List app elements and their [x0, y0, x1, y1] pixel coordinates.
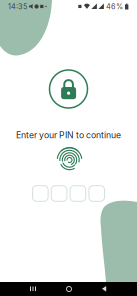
- staticText: Enter your PIN to continue: [16, 130, 121, 140]
- button[interactable]: PIN digit: [70, 186, 86, 201]
- button[interactable]: Unlock with fingerprint: [1, 143, 137, 171]
- staticText: 46%: [106, 2, 123, 11]
- button[interactable]: Recent apps: [30, 286, 36, 291]
- button[interactable]: Back: [102, 286, 107, 292]
- button[interactable]: PIN digit: [89, 186, 104, 201]
- button[interactable]: Home: [66, 286, 72, 292]
- staticText: 14:35: [8, 2, 27, 11]
- button[interactable]: PIN digit: [51, 186, 67, 201]
- button[interactable]: PIN digit: [32, 186, 48, 201]
